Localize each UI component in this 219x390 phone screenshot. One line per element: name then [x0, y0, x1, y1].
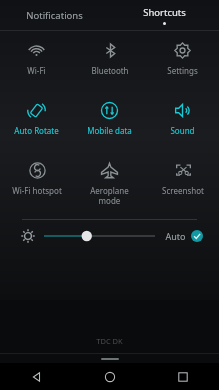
button[interactable]: Wi-Fi hotspot	[0, 159, 73, 207]
button[interactable]: Wi-Fi	[0, 39, 73, 87]
button[interactable]: Screenshot	[146, 159, 219, 207]
staticText: Shortcuts	[143, 6, 186, 19]
button[interactable]: Back	[0, 363, 73, 390]
button[interactable]: Sound	[146, 99, 219, 147]
staticText: Aeroplane mode	[90, 185, 129, 206]
staticText: Auto Rotate	[14, 125, 59, 136]
button[interactable]: Brightness slider	[44, 224, 155, 248]
other: Brightness	[18, 226, 38, 246]
staticText: Wi-Fi hotspot	[12, 185, 62, 196]
button[interactable]: Bluetooth	[73, 39, 146, 87]
staticText: Notifications	[26, 9, 83, 22]
button[interactable]: Shortcuts	[109, 0, 219, 30]
button[interactable]: Auto	[163, 227, 205, 245]
button[interactable]: Notifications	[0, 0, 109, 30]
staticText: Sound	[170, 125, 195, 136]
button[interactable]: Settings	[146, 39, 219, 87]
staticText: Screenshot	[162, 185, 204, 196]
staticText: Auto	[165, 230, 186, 242]
staticText: Mobile data	[87, 125, 132, 136]
staticText: Wi-Fi	[27, 65, 46, 76]
button[interactable]: Mobile data	[73, 99, 146, 147]
button[interactable]: Recents	[146, 363, 219, 390]
button[interactable]: Auto Rotate	[0, 99, 73, 147]
button[interactable]: Aeroplane mode	[73, 159, 146, 207]
button[interactable]: Home	[73, 363, 146, 390]
staticText: Settings	[167, 65, 198, 76]
staticText: TDC DK	[96, 336, 123, 346]
staticText: Bluetooth	[91, 65, 129, 76]
